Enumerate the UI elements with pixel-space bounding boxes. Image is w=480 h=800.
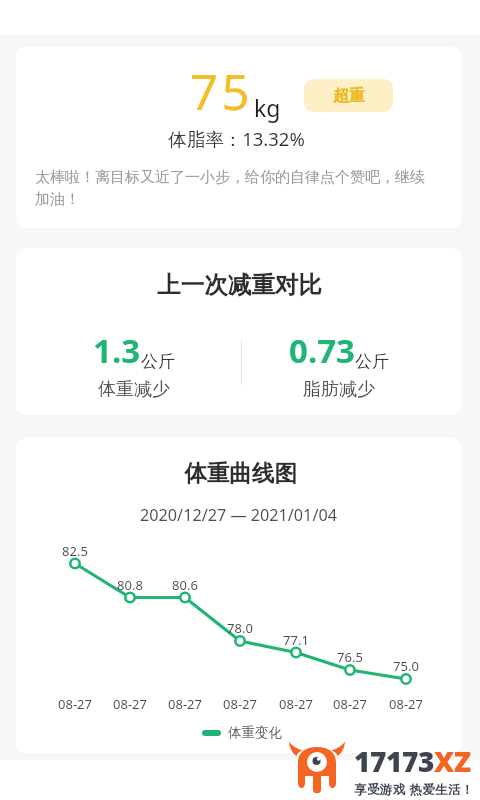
staticText: 0.73 <box>289 328 355 373</box>
staticText: 82.5 <box>62 542 88 560</box>
staticText: 17173XZ <box>354 742 471 780</box>
staticText: 76.5 <box>337 648 363 666</box>
staticText: 08-27 <box>389 695 423 713</box>
staticText: 77.1 <box>283 631 309 649</box>
other: 17173XZ logo <box>287 740 349 793</box>
staticText: 体重变化 <box>228 724 282 741</box>
button[interactable]: 75 <box>16 47 462 228</box>
staticText: 2020/12/27 — 2021/01/04 <box>140 504 337 526</box>
staticText: 上一次减重对比 <box>157 270 322 300</box>
staticText: 公斤 <box>355 351 389 372</box>
staticText: 体重曲线图 <box>184 459 297 487</box>
staticText: 75 <box>190 58 254 125</box>
staticText: 80.6 <box>172 576 198 594</box>
button[interactable]: 体重曲线图 <box>16 438 462 753</box>
staticText: 体重减少 <box>98 378 170 401</box>
staticText: 78.0 <box>227 619 253 637</box>
button[interactable]: 上一次减重对比 <box>16 248 462 415</box>
staticText: 80.8 <box>117 576 143 594</box>
staticText: 75.0 <box>393 657 419 675</box>
staticText: kg <box>254 92 281 123</box>
staticText: 公斤 <box>141 351 175 372</box>
staticText: 享受游戏 热爱生活！ <box>354 781 474 796</box>
staticText: 体脂率：13.32% <box>168 126 305 151</box>
staticText: 太棒啦！离目标又近了一小步，给你的自律点个赞吧，继续加油！ <box>35 168 435 209</box>
staticText: 脂肪减少 <box>303 378 375 401</box>
staticText: 1.3 <box>93 328 141 373</box>
staticText: 08-27 <box>333 695 367 713</box>
staticText: 08-27 <box>279 695 313 713</box>
staticText: 超重 <box>333 86 365 106</box>
staticText: 08-27 <box>223 695 257 713</box>
staticText: 08-27 <box>113 695 147 713</box>
button[interactable]: 超重 <box>304 79 393 112</box>
staticText: 08-27 <box>168 695 202 713</box>
staticText: 08-27 <box>58 695 92 713</box>
